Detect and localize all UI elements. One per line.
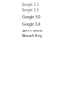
staticText: SEARCH ENGINE: [22, 29, 42, 32]
staticText: Google 2.6: [22, 8, 39, 12]
staticText: Microsoft Bing: [22, 34, 42, 38]
staticText: Google 3.4: [22, 21, 40, 27]
staticText: Google 2.2: [22, 3, 39, 6]
staticText: Google 3.0: [22, 14, 40, 19]
